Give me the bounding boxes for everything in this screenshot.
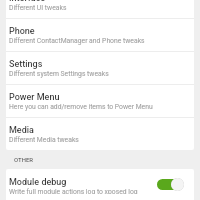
staticText: Different UI tweaks (9, 4, 67, 12)
button[interactable]: Module debug toggle (157, 177, 184, 194)
staticText: OTHER (14, 156, 34, 163)
staticText: Here you can add/remove items to Power M… (9, 103, 153, 111)
button[interactable]: Module debug (6, 169, 194, 200)
staticText: Power Menu (9, 92, 60, 103)
button[interactable]: Power Menu (6, 85, 194, 117)
staticText: Interface (9, 0, 46, 4)
staticText: Media (9, 125, 34, 136)
staticText: Different system Settings tweaks (9, 70, 109, 78)
staticText: Settings (9, 59, 43, 70)
button[interactable]: Interface (6, 0, 194, 18)
staticText: Phone (9, 26, 35, 37)
staticText: Different ContactManager and Phone tweak… (9, 37, 145, 45)
button[interactable]: Media (6, 118, 194, 150)
staticText: Different Media tweaks (9, 136, 79, 144)
staticText: Module debug (9, 177, 67, 188)
staticText: Write full module actions log to xposed … (9, 188, 138, 194)
button[interactable]: Phone (6, 19, 194, 51)
button[interactable]: Settings (6, 52, 194, 84)
